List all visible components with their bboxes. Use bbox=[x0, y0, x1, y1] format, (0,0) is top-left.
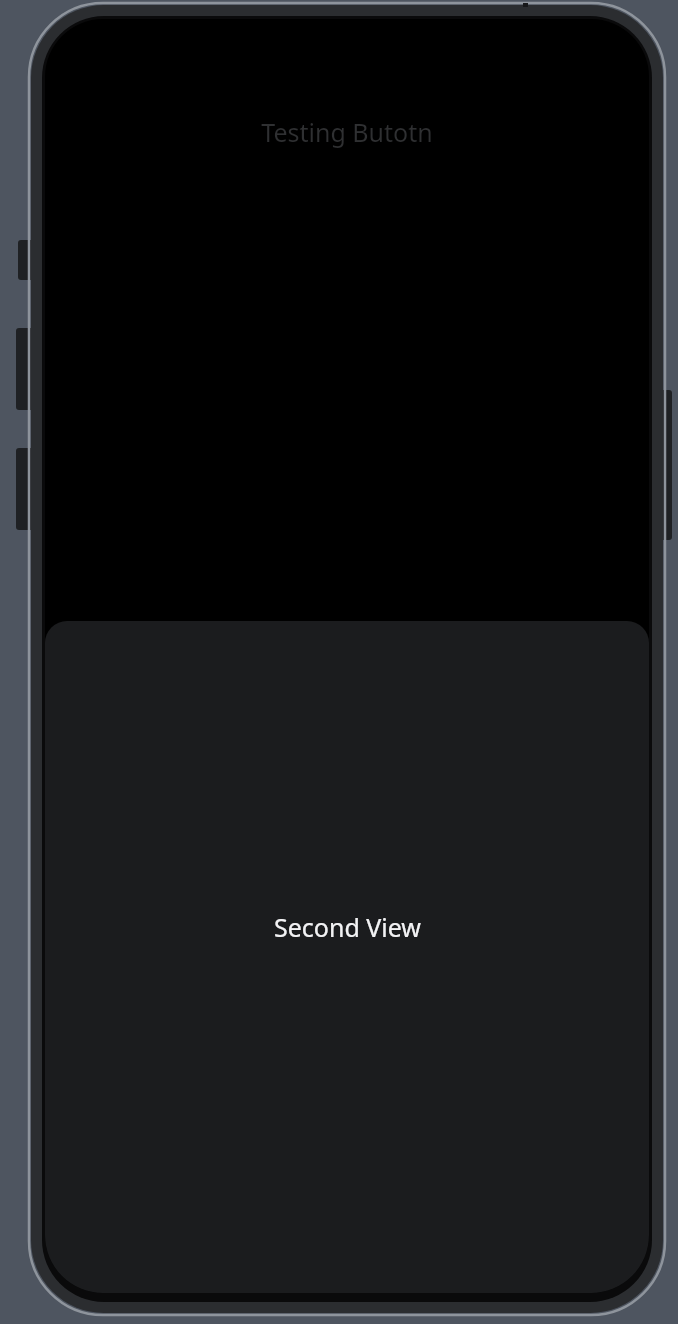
staticText: Second View bbox=[274, 910, 421, 944]
staticText: Testing Butotn bbox=[261, 115, 433, 149]
button[interactable]: Testing Butotn bbox=[251, 111, 443, 153]
button[interactable]: Second View bbox=[45, 621, 649, 1293]
button[interactable]: Second View bbox=[262, 904, 433, 950]
